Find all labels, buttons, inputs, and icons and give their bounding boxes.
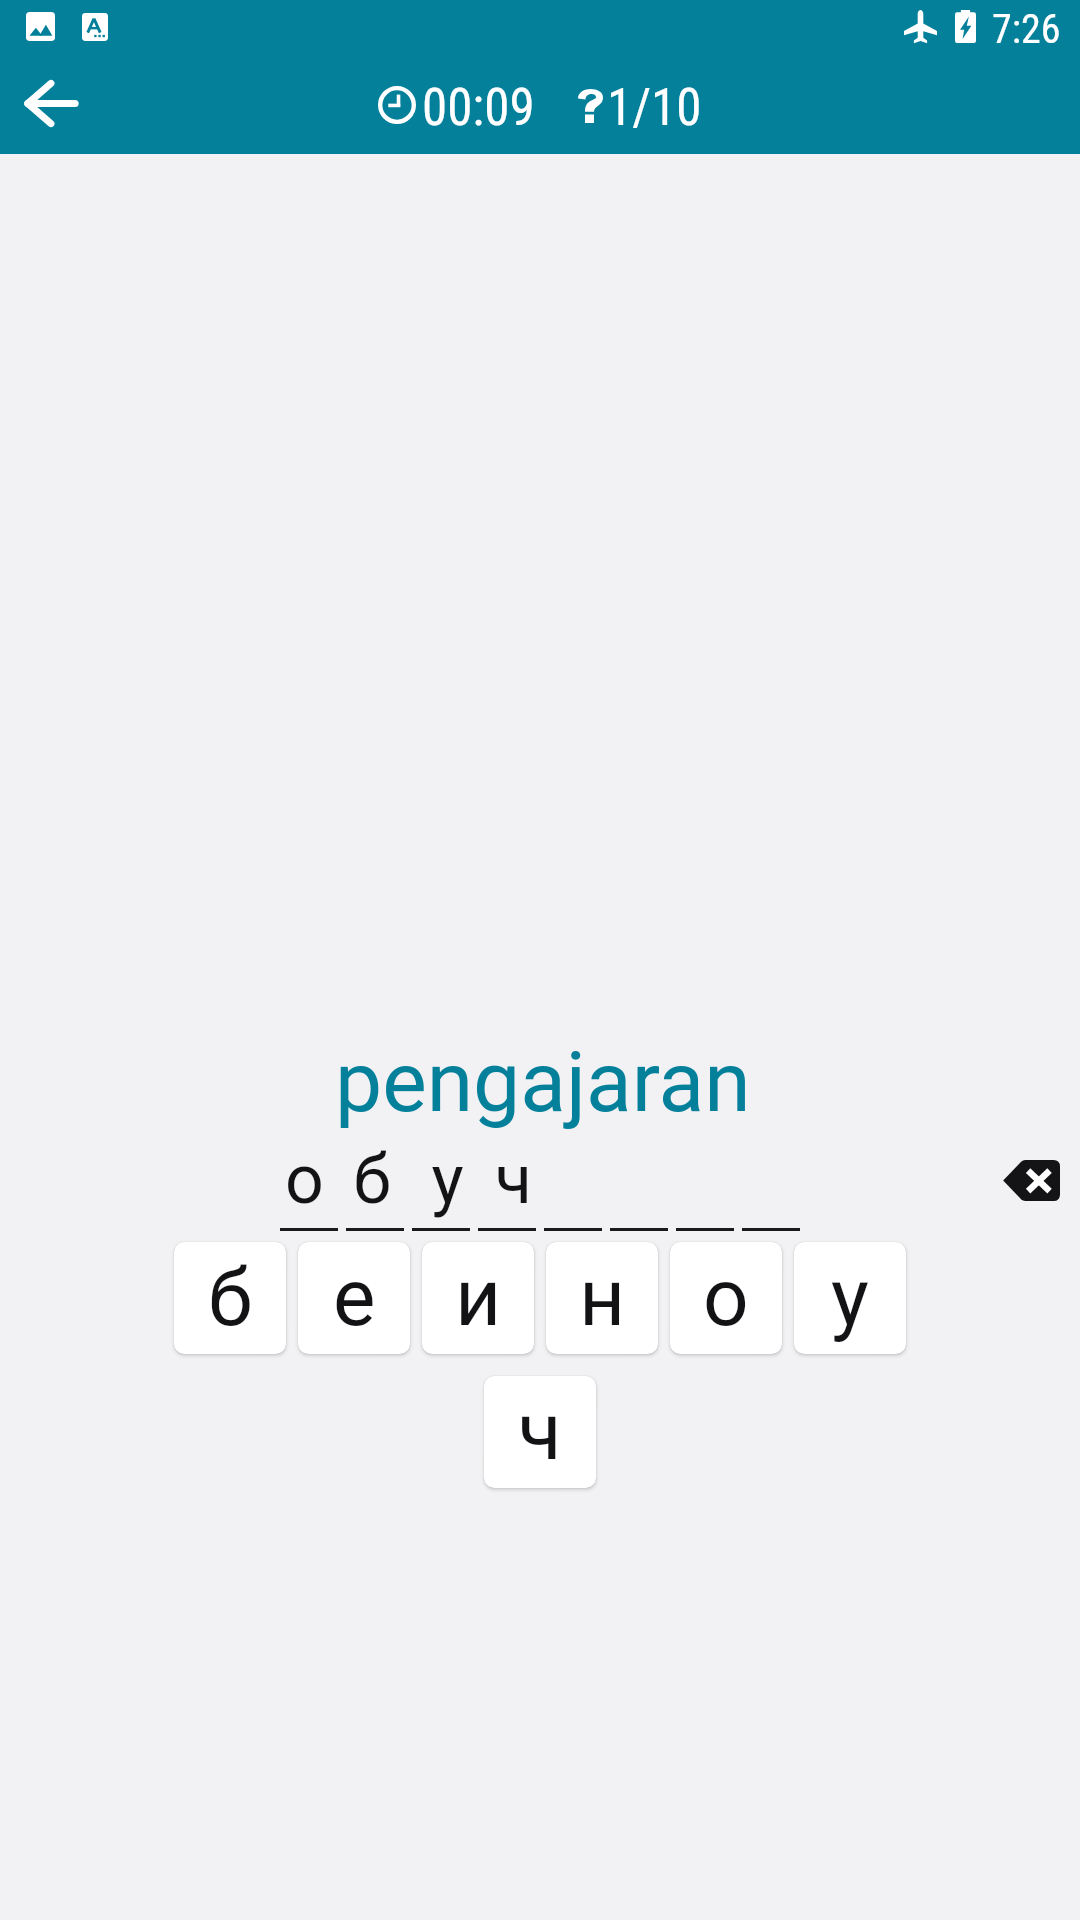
staticText: у bbox=[431, 1140, 464, 1220]
staticText: о bbox=[285, 1140, 324, 1220]
staticText: 1/10 bbox=[607, 78, 702, 138]
staticText: ч bbox=[495, 1140, 532, 1220]
button[interactable]: Back bbox=[7, 59, 95, 147]
staticText: б bbox=[208, 1251, 253, 1345]
button[interactable]: н bbox=[546, 1242, 658, 1354]
button[interactable]: б bbox=[174, 1242, 286, 1354]
staticText: ч bbox=[518, 1385, 562, 1479]
staticText: е bbox=[333, 1251, 376, 1345]
staticText: 00:09 bbox=[422, 78, 535, 138]
button[interactable]: е bbox=[298, 1242, 410, 1354]
button[interactable]: у bbox=[794, 1242, 906, 1354]
staticText: у bbox=[831, 1251, 869, 1345]
staticText: о bbox=[703, 1251, 749, 1345]
button[interactable]: Backspace bbox=[986, 1135, 1076, 1225]
button[interactable]: ч bbox=[484, 1376, 596, 1488]
staticText: н bbox=[579, 1251, 626, 1345]
button[interactable]: и bbox=[422, 1242, 534, 1354]
staticText: 7:26 bbox=[992, 6, 1061, 53]
staticText: б bbox=[353, 1140, 391, 1220]
staticText: и bbox=[455, 1251, 502, 1345]
staticText: pengajaran bbox=[335, 1033, 751, 1131]
button[interactable]: о bbox=[670, 1242, 782, 1354]
